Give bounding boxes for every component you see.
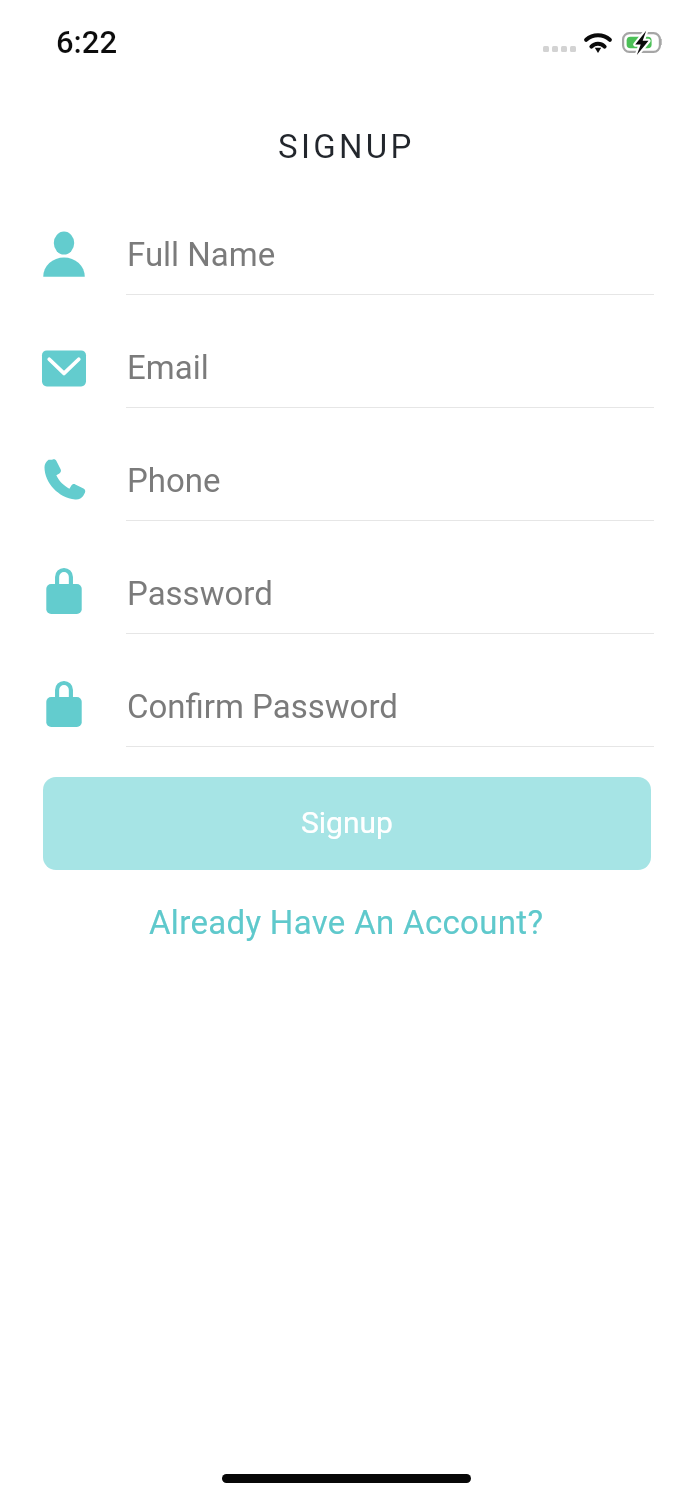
staticText: SIGNUP	[278, 127, 415, 166]
staticText: Already Have An Account?	[149, 903, 544, 942]
button[interactable]: Confirm password	[0, 677, 693, 790]
button[interactable]: Already Have An Account?	[139, 895, 554, 950]
other: Wi-Fi	[584, 32, 612, 53]
staticText: 6:22	[56, 24, 118, 60]
button[interactable]: Person	[0, 225, 693, 338]
staticText: Email	[127, 348, 209, 387]
staticText: Confirm Password	[127, 687, 398, 726]
staticText: Signup	[301, 805, 393, 840]
staticText: Full Name	[127, 235, 276, 274]
other: Battery charging	[622, 32, 667, 53]
button[interactable]: Email	[0, 338, 693, 451]
staticText: Password	[127, 574, 273, 613]
button[interactable]: Signup	[43, 777, 651, 870]
button[interactable]: Password	[0, 564, 693, 677]
button[interactable]: Phone	[0, 451, 693, 564]
staticText: Phone	[127, 461, 221, 500]
